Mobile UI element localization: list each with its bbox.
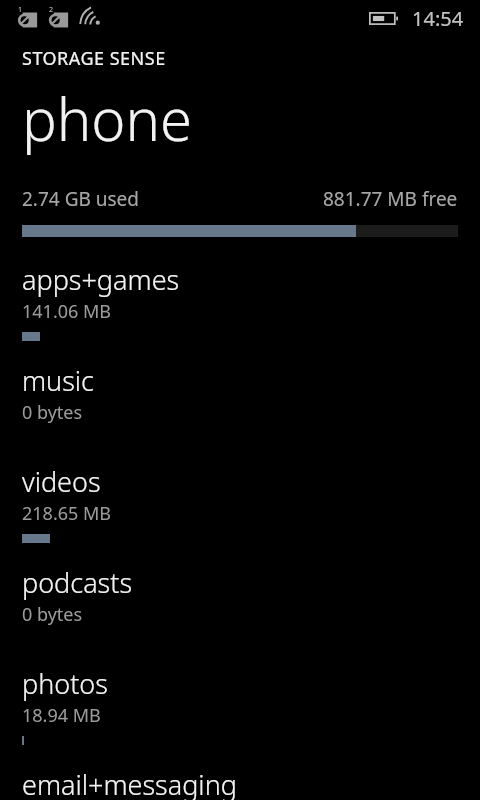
staticText: 2.74 GB used	[22, 186, 140, 212]
button[interactable]: videos	[0, 463, 480, 543]
button[interactable]: photos	[0, 665, 480, 745]
staticText: 14:54	[412, 5, 464, 32]
staticText: 2	[49, 5, 54, 15]
staticText: STORAGE SENSE	[22, 46, 166, 71]
button[interactable]: email+messaging	[0, 766, 480, 800]
staticText: 0 bytes	[22, 400, 83, 425]
staticText: phone	[22, 79, 192, 158]
other: SIM 2	[47, 7, 71, 29]
staticText: 881.77 MB free	[323, 186, 458, 212]
other: SIM 1	[16, 7, 40, 29]
button[interactable]: music	[0, 362, 480, 442]
other: Battery	[369, 10, 401, 27]
staticText: podcasts	[22, 564, 133, 601]
staticText: apps+games	[22, 261, 180, 298]
staticText: videos	[22, 463, 101, 500]
staticText: music	[22, 362, 94, 399]
staticText: 18.94 MB	[22, 703, 101, 728]
button[interactable]: apps+games	[0, 261, 480, 341]
staticText: 1	[18, 5, 23, 15]
staticText: 0 bytes	[22, 602, 83, 627]
staticText: photos	[22, 665, 108, 702]
staticText: email+messaging	[22, 766, 237, 800]
button[interactable]: podcasts	[0, 564, 480, 644]
other: Wi-Fi	[78, 7, 102, 29]
staticText: 218.65 MB	[22, 501, 112, 526]
staticText: 141.06 MB	[22, 299, 112, 324]
